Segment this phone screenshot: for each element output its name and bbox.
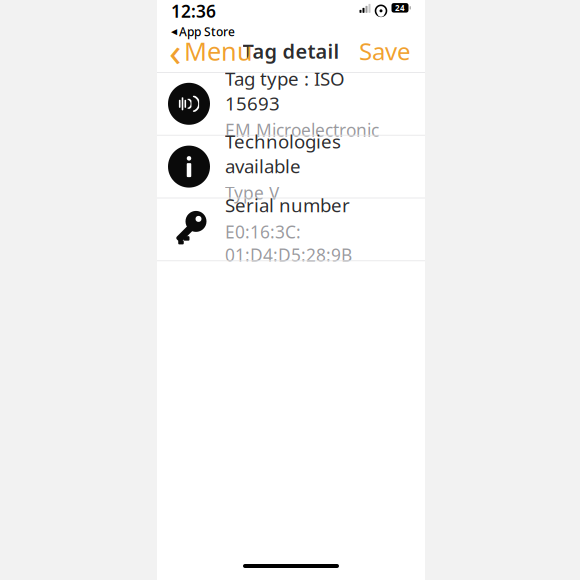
staticText: E0:16:3C:01:D4:D5:28:9B (225, 220, 352, 266)
staticText: ‹ (169, 24, 181, 77)
button[interactable]: Serial number (157, 198, 425, 260)
staticText: EM Microelectronic (225, 119, 379, 142)
staticText: Tag type : ISO 15693 (225, 66, 345, 116)
staticText: Serial number (225, 192, 350, 217)
button[interactable]: ‹ (161, 34, 261, 68)
staticText: 24 (395, 2, 405, 13)
staticText: Technologies available (225, 129, 341, 178)
button[interactable]: Technologies available (157, 136, 425, 198)
staticText: Type V (225, 181, 279, 204)
staticText: 12:36 (171, 0, 216, 22)
staticText: ◀ (171, 27, 177, 36)
button[interactable]: Save (349, 34, 421, 68)
staticText: Tag detail (242, 38, 339, 64)
staticText: App Store (179, 23, 235, 39)
button[interactable]: Tag type : ISO 15693 (157, 73, 425, 135)
staticText: Menu (184, 34, 253, 68)
staticText: Save (359, 35, 411, 67)
